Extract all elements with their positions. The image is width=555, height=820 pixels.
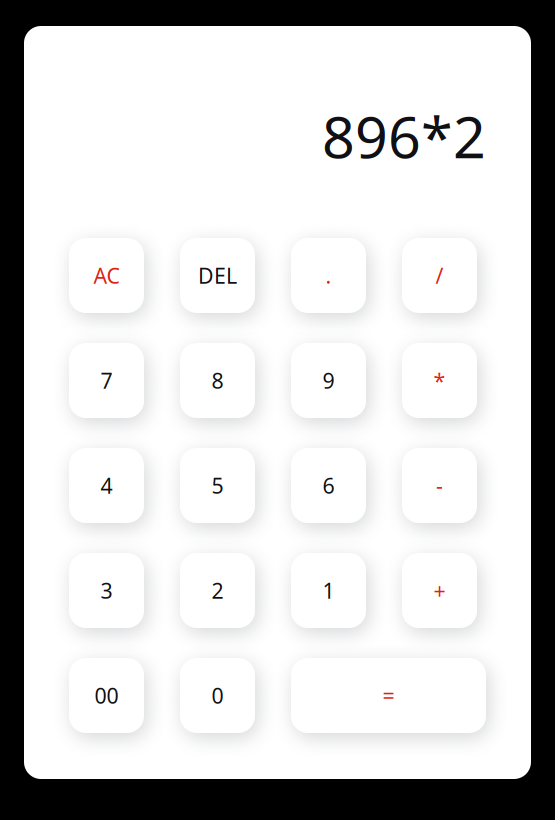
button[interactable]: Multiply: [402, 343, 477, 418]
button[interactable]: 00: [69, 658, 144, 733]
staticText: 5: [211, 471, 223, 500]
button[interactable]: Decimal point: [291, 238, 366, 313]
staticText: 1: [322, 576, 334, 605]
button[interactable]: All clear: [69, 238, 144, 313]
staticText: =: [382, 681, 394, 710]
button[interactable]: 0: [180, 658, 255, 733]
button[interactable]: 9: [291, 343, 366, 418]
button[interactable]: 7: [69, 343, 144, 418]
staticText: 2: [211, 576, 223, 605]
staticText: 4: [100, 471, 112, 500]
button[interactable]: 8: [180, 343, 255, 418]
staticText: 7: [100, 366, 112, 395]
staticText: 6: [322, 471, 334, 500]
button[interactable]: Plus: [402, 553, 477, 628]
button[interactable]: 4: [69, 448, 144, 523]
staticText: 9: [322, 366, 334, 395]
button[interactable]: Delete: [180, 238, 255, 313]
staticText: 3: [100, 576, 112, 605]
button[interactable]: 1: [291, 553, 366, 628]
staticText: DEL: [198, 261, 237, 290]
staticText: 896*2: [322, 98, 486, 174]
staticText: /: [435, 261, 443, 290]
staticText: -: [436, 471, 443, 500]
staticText: AC: [93, 261, 119, 290]
button[interactable]: Divide: [402, 238, 477, 313]
staticText: 8: [211, 366, 223, 395]
button[interactable]: 2: [180, 553, 255, 628]
button[interactable]: 5: [180, 448, 255, 523]
button[interactable]: 6: [291, 448, 366, 523]
button[interactable]: 3: [69, 553, 144, 628]
button[interactable]: Minus: [402, 448, 477, 523]
button[interactable]: Equals: [291, 658, 486, 733]
staticText: 0: [211, 681, 223, 710]
staticText: *: [433, 366, 445, 395]
staticText: +: [433, 576, 445, 605]
staticText: .: [325, 261, 331, 290]
staticText: 00: [94, 681, 118, 710]
